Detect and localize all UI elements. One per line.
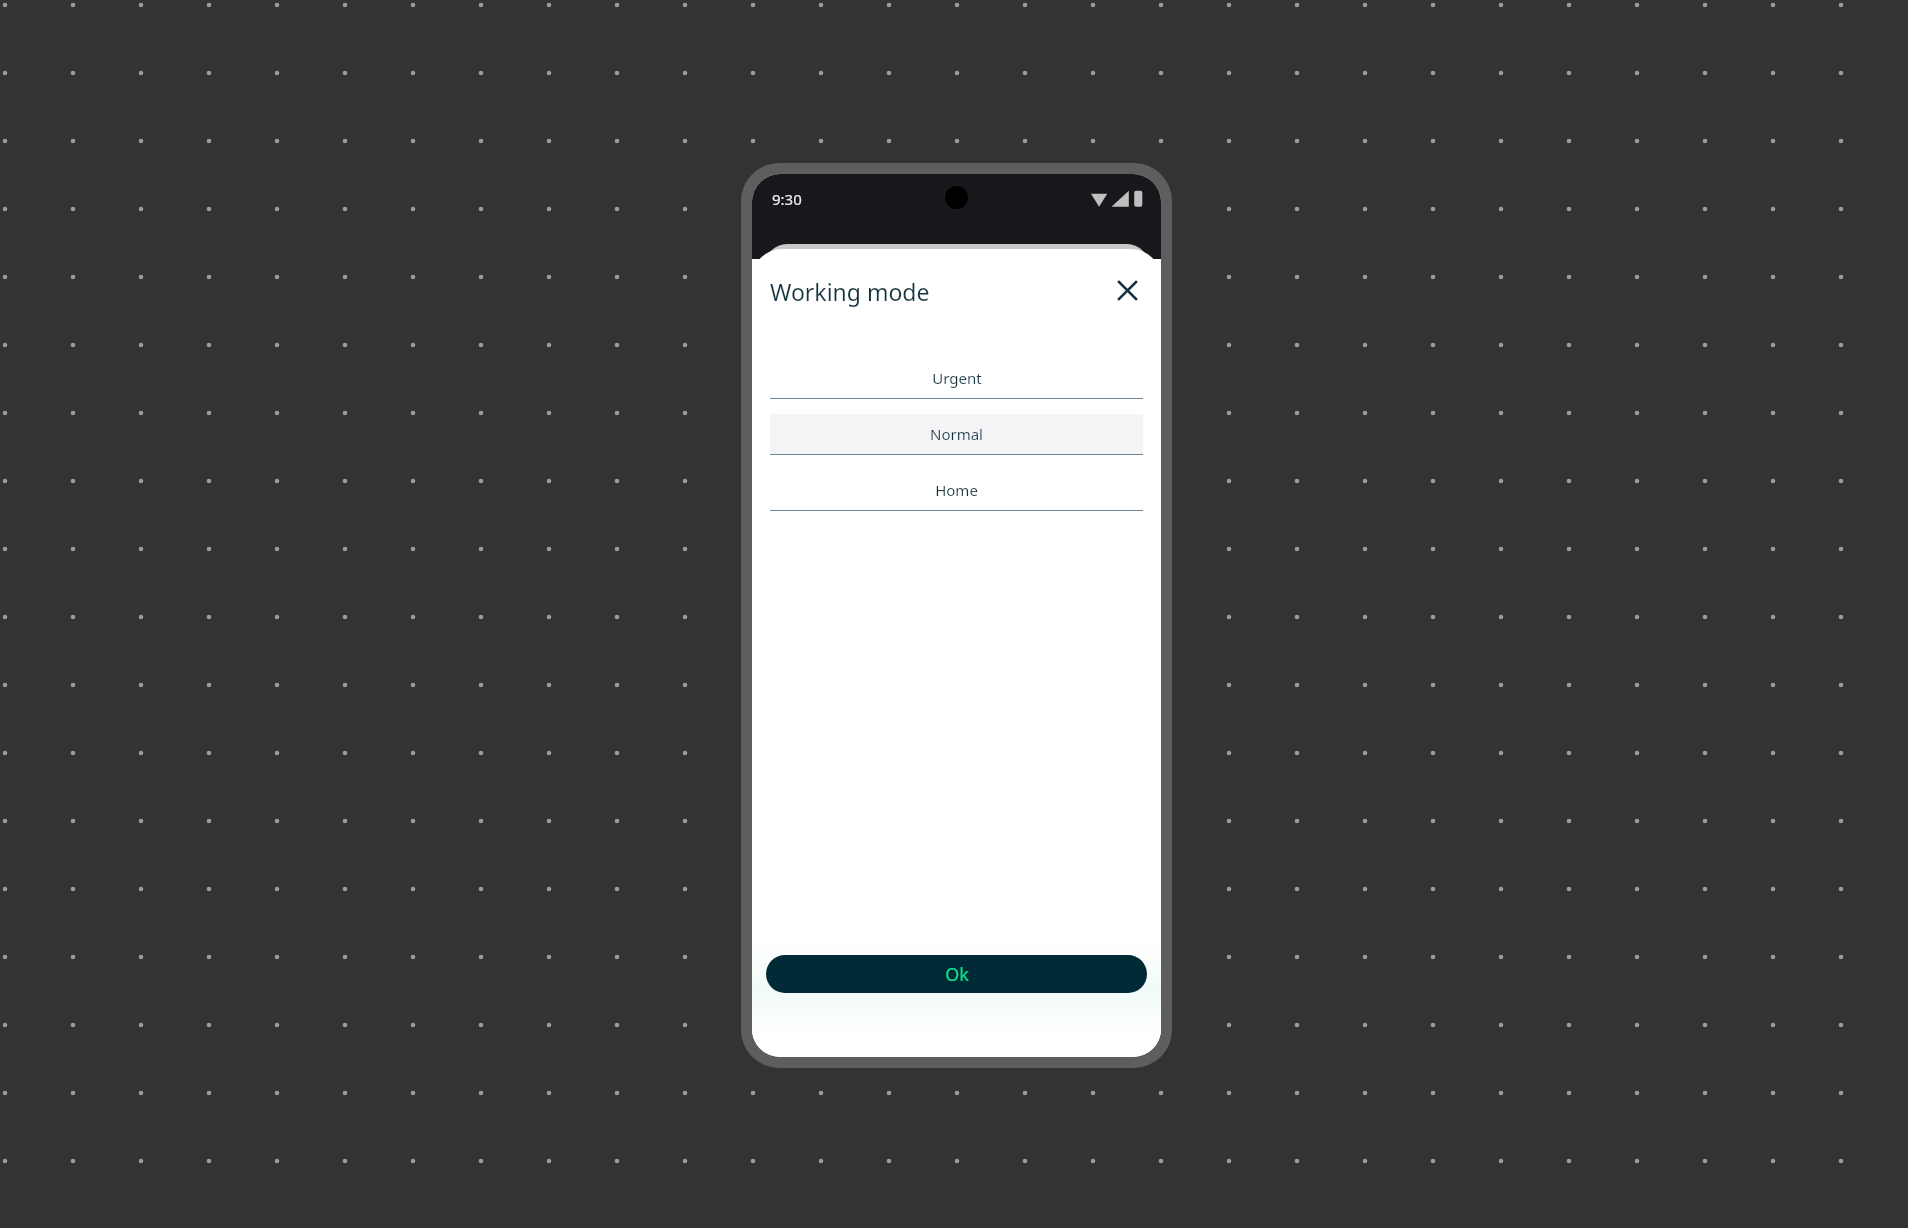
staticText: Home: [935, 480, 978, 500]
staticText: Ok: [945, 962, 969, 987]
staticText: Urgent: [932, 368, 982, 388]
staticText: Normal: [930, 424, 983, 444]
button[interactable]: Home: [752, 470, 1161, 526]
button[interactable]: Close: [1106, 269, 1148, 311]
button[interactable]: Normal: [752, 414, 1161, 470]
staticText: 9:30: [772, 189, 802, 209]
staticText: Working mode: [770, 276, 930, 307]
button[interactable]: Urgent: [752, 358, 1161, 414]
button[interactable]: Ok: [766, 955, 1147, 993]
